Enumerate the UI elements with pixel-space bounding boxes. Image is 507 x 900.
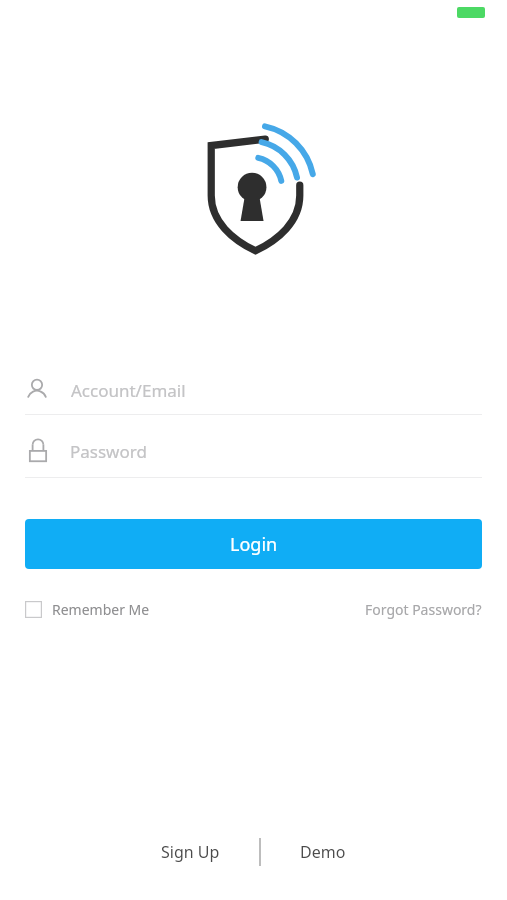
staticText: Remember Me: [52, 600, 150, 619]
button[interactable]: Password: [0, 426, 507, 476]
staticText: Password: [70, 440, 147, 463]
button[interactable]: Account/Email: [0, 365, 507, 415]
staticText: Login: [230, 532, 278, 557]
staticText: Demo: [300, 841, 346, 863]
staticText: Forgot Password?: [365, 600, 482, 619]
other: App logo: [198, 128, 313, 258]
button[interactable]: Sign Up: [161, 835, 220, 869]
button[interactable]: Remember Me: [25, 594, 150, 624]
button[interactable]: Forgot Password?: [340, 594, 482, 624]
staticText: Account/Email: [71, 379, 186, 402]
button[interactable]: Login: [25, 519, 482, 569]
staticText: Sign Up: [161, 841, 220, 863]
button[interactable]: Demo: [300, 835, 346, 869]
